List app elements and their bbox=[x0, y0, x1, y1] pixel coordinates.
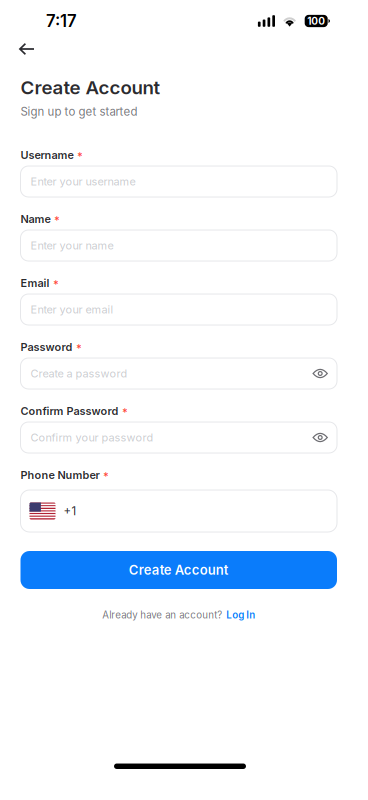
staticText: +1 bbox=[63, 504, 76, 518]
button[interactable]: Create a password bbox=[20, 358, 337, 389]
staticText: * bbox=[76, 342, 82, 355]
staticText: 100 bbox=[307, 15, 325, 27]
staticText: * bbox=[103, 470, 109, 483]
staticText: Enter your email bbox=[30, 303, 113, 316]
staticText: Phone Number bbox=[20, 468, 99, 482]
staticText: Enter your username bbox=[30, 175, 135, 188]
button[interactable]: Enter your name bbox=[20, 230, 337, 261]
button[interactable]: +1 bbox=[20, 490, 337, 532]
staticText: Create Account bbox=[20, 76, 160, 99]
staticText: Enter your name bbox=[30, 239, 113, 252]
button[interactable]: Enter your username bbox=[20, 166, 337, 197]
staticText: Password bbox=[20, 340, 72, 354]
button[interactable]: Create Account bbox=[20, 551, 337, 589]
staticText: Create Account bbox=[129, 562, 229, 578]
button[interactable]: Back bbox=[0, 36, 46, 62]
staticText: Confirm Password bbox=[20, 404, 118, 418]
staticText: * bbox=[53, 278, 59, 291]
button[interactable]: Enter your email bbox=[20, 294, 337, 325]
staticText: Email bbox=[20, 276, 49, 290]
staticText: Name bbox=[20, 212, 50, 226]
staticText: Log In bbox=[226, 609, 255, 621]
staticText: 7:17 bbox=[46, 11, 77, 31]
staticText: Username bbox=[20, 148, 73, 162]
staticText: * bbox=[122, 406, 128, 419]
staticText: * bbox=[54, 214, 60, 227]
staticText: Already have an account? bbox=[102, 609, 222, 621]
button[interactable]: Confirm your password bbox=[20, 422, 337, 453]
button[interactable]: Already have an account? bbox=[20, 609, 337, 621]
staticText: Confirm your password bbox=[30, 431, 153, 444]
staticText: * bbox=[77, 150, 83, 163]
staticText: Create a password bbox=[30, 367, 127, 380]
staticText: Sign up to get started bbox=[20, 105, 137, 118]
